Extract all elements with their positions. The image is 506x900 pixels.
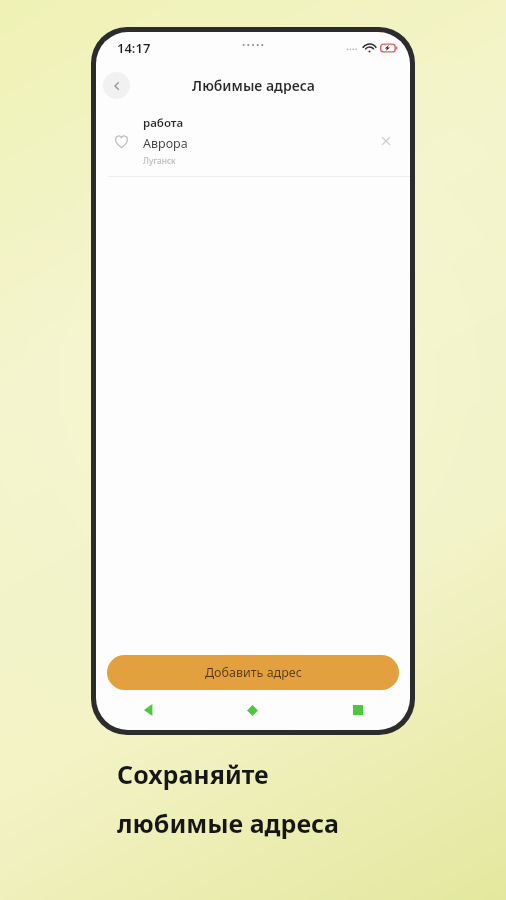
staticText: Сохраняйте	[117, 757, 269, 791]
staticText: Луганск	[143, 155, 176, 167]
button[interactable]: Favorite	[96, 106, 410, 176]
button[interactable]: Recents	[305, 698, 410, 722]
button[interactable]: Home	[200, 698, 305, 722]
button[interactable]: Back	[96, 698, 200, 722]
button[interactable]: Remove	[374, 129, 398, 153]
staticText: 14:17	[117, 39, 151, 57]
button[interactable]: Favorite	[108, 128, 134, 154]
staticText: Аврора	[143, 135, 188, 152]
button[interactable]: Back	[103, 72, 130, 99]
staticText: Добавить адрес	[205, 664, 302, 681]
staticText: работа	[143, 115, 184, 131]
staticText: Любимые адреса	[192, 76, 315, 95]
button[interactable]: Добавить адрес	[107, 655, 399, 690]
staticText: любимые адреса	[117, 806, 339, 840]
